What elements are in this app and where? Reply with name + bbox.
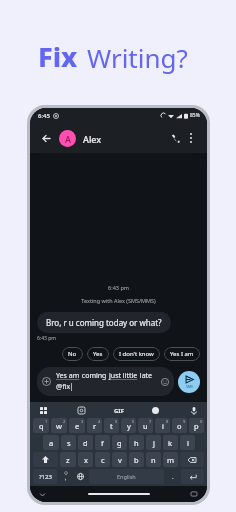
staticText: 85% <box>190 112 200 119</box>
button[interactable]: Send <box>178 371 200 393</box>
staticText: k <box>168 438 173 448</box>
staticText: I don't know <box>119 350 154 358</box>
staticText: w <box>56 421 62 431</box>
button[interactable]: r <box>87 418 102 433</box>
staticText: 6:43 pm <box>37 284 200 291</box>
staticText: q <box>39 421 44 431</box>
button[interactable]: A <box>59 130 167 147</box>
button[interactable]: w <box>51 418 67 433</box>
staticText: a <box>49 438 54 448</box>
staticText: 6:43 pm <box>37 335 56 342</box>
staticText: SMS <box>186 384 194 389</box>
staticText: Alex <box>83 133 102 145</box>
staticText: No <box>68 350 77 358</box>
staticText: Fix <box>38 38 78 75</box>
staticText: l <box>187 438 189 448</box>
staticText: GIF <box>114 407 124 415</box>
button[interactable]: Apps <box>37 404 50 417</box>
button[interactable]: Call <box>167 130 183 146</box>
staticText: 7 <box>149 419 152 424</box>
button[interactable]: No <box>62 347 83 361</box>
button[interactable]: Space <box>89 469 164 484</box>
staticText: g <box>117 438 122 448</box>
other: Keyboard switch <box>191 491 197 497</box>
button[interactable]: n <box>146 452 161 467</box>
button[interactable]: Emoji <box>149 404 162 417</box>
staticText: . <box>172 473 174 481</box>
staticText: 0 <box>200 419 203 424</box>
staticText: , <box>65 475 67 482</box>
staticText: late <box>138 371 153 381</box>
button[interactable]: Comma <box>59 469 72 484</box>
button[interactable]: g <box>112 435 127 450</box>
staticText: Writing? <box>87 40 188 75</box>
staticText: coming <box>80 371 109 381</box>
button[interactable]: d <box>78 435 93 450</box>
button[interactable]: Stickers <box>75 404 88 417</box>
staticText: 9 <box>183 419 186 424</box>
button[interactable]: Yes <box>87 347 109 361</box>
staticText: p <box>194 421 199 431</box>
staticText: c <box>101 455 105 465</box>
button[interactable]: k <box>163 435 178 450</box>
staticText: 6 <box>132 419 135 424</box>
staticText: 3 <box>81 419 84 424</box>
button[interactable]: Yes am <box>37 367 174 396</box>
button[interactable]: e <box>69 418 85 433</box>
staticText: Yes <box>93 350 103 358</box>
staticText: Bro, r u coming today or what? <box>46 317 162 328</box>
button[interactable]: Enter <box>181 469 204 484</box>
staticText: 1 <box>45 419 48 424</box>
staticText: i <box>162 421 164 431</box>
staticText: x <box>84 455 88 465</box>
button[interactable]: i <box>155 418 170 433</box>
staticText: 6:45 <box>38 112 50 120</box>
button[interactable]: Back <box>38 130 54 146</box>
button[interactable]: Shift <box>33 452 58 467</box>
staticText: t <box>110 421 113 431</box>
staticText: Texting with Alex (SMS/MMS) <box>37 297 200 304</box>
button[interactable]: p <box>189 418 204 433</box>
button[interactable]: a <box>43 435 59 450</box>
staticText: f <box>101 438 104 448</box>
button[interactable]: t <box>104 418 119 433</box>
button[interactable]: v <box>112 452 127 467</box>
button[interactable]: s <box>61 435 76 450</box>
button[interactable]: b <box>129 452 144 467</box>
button[interactable]: Voice input <box>187 404 200 417</box>
staticText: English <box>117 473 136 480</box>
staticText: A <box>65 133 71 145</box>
staticText: o <box>177 421 182 431</box>
button[interactable]: q <box>33 418 49 433</box>
button[interactable]: m <box>163 452 178 467</box>
button[interactable]: u <box>138 418 153 433</box>
button[interactable]: o <box>172 418 187 433</box>
button[interactable]: Yes I am <box>164 347 200 361</box>
staticText: u <box>143 421 148 431</box>
button[interactable]: GIF <box>114 404 124 417</box>
staticText: ?123 <box>39 473 52 481</box>
button[interactable]: j <box>146 435 161 450</box>
button[interactable]: Symbols <box>33 469 57 484</box>
button[interactable]: Bro, r u coming today or what? <box>37 312 171 333</box>
button[interactable]: Language <box>74 469 87 484</box>
staticText: v <box>118 455 122 465</box>
button[interactable]: Backspace <box>180 452 204 467</box>
staticText: z <box>66 455 70 465</box>
staticText: n <box>151 455 156 465</box>
button[interactable]: y <box>121 418 136 433</box>
staticText: 5 <box>115 419 118 424</box>
button[interactable]: h <box>129 435 144 450</box>
button[interactable]: I don't know <box>113 347 160 361</box>
staticText: d <box>83 438 88 448</box>
staticText: m <box>167 455 175 465</box>
button[interactable]: Period <box>166 469 179 484</box>
staticText: @fix <box>56 382 71 392</box>
button[interactable]: l <box>180 435 195 450</box>
staticText: r <box>93 421 97 431</box>
button[interactable]: x <box>78 452 93 467</box>
button[interactable]: More options <box>183 130 199 146</box>
button[interactable]: c <box>95 452 110 467</box>
button[interactable]: z <box>60 452 76 467</box>
button[interactable]: f <box>95 435 110 450</box>
